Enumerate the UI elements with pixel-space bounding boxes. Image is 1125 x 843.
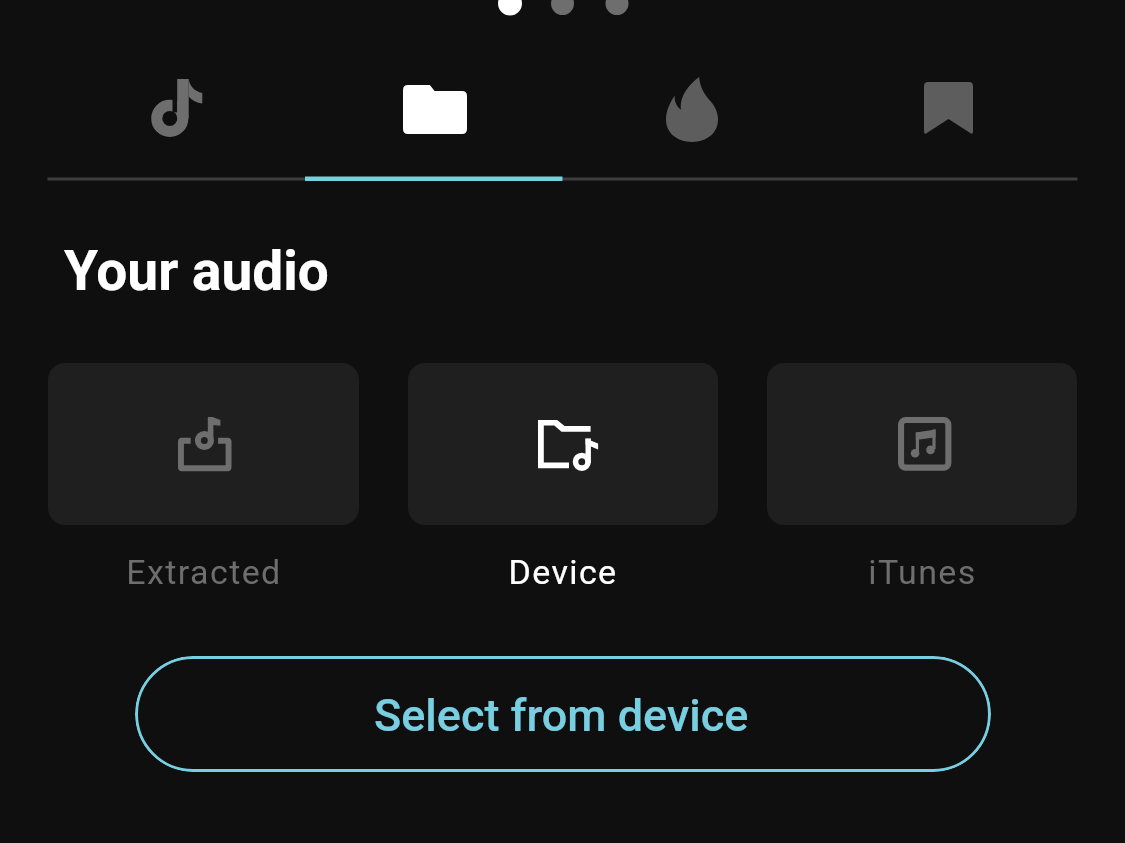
staticText: iTunes — [868, 552, 977, 592]
staticText: Device — [508, 552, 618, 592]
button[interactable]: Saved — [820, 0, 1077, 180]
button[interactable]: Files — [306, 0, 563, 180]
staticText: Select from device — [374, 689, 749, 742]
button[interactable]: TikTok videos — [48, 0, 306, 180]
button[interactable]: Trending — [563, 0, 820, 180]
staticText: Your audio — [64, 239, 329, 303]
button[interactable]: Extracted — [48, 363, 359, 592]
button[interactable]: iTunes — [767, 363, 1077, 592]
button[interactable]: Device — [408, 363, 718, 592]
staticText: Extracted — [126, 552, 282, 592]
button[interactable]: Select from device — [135, 656, 991, 772]
